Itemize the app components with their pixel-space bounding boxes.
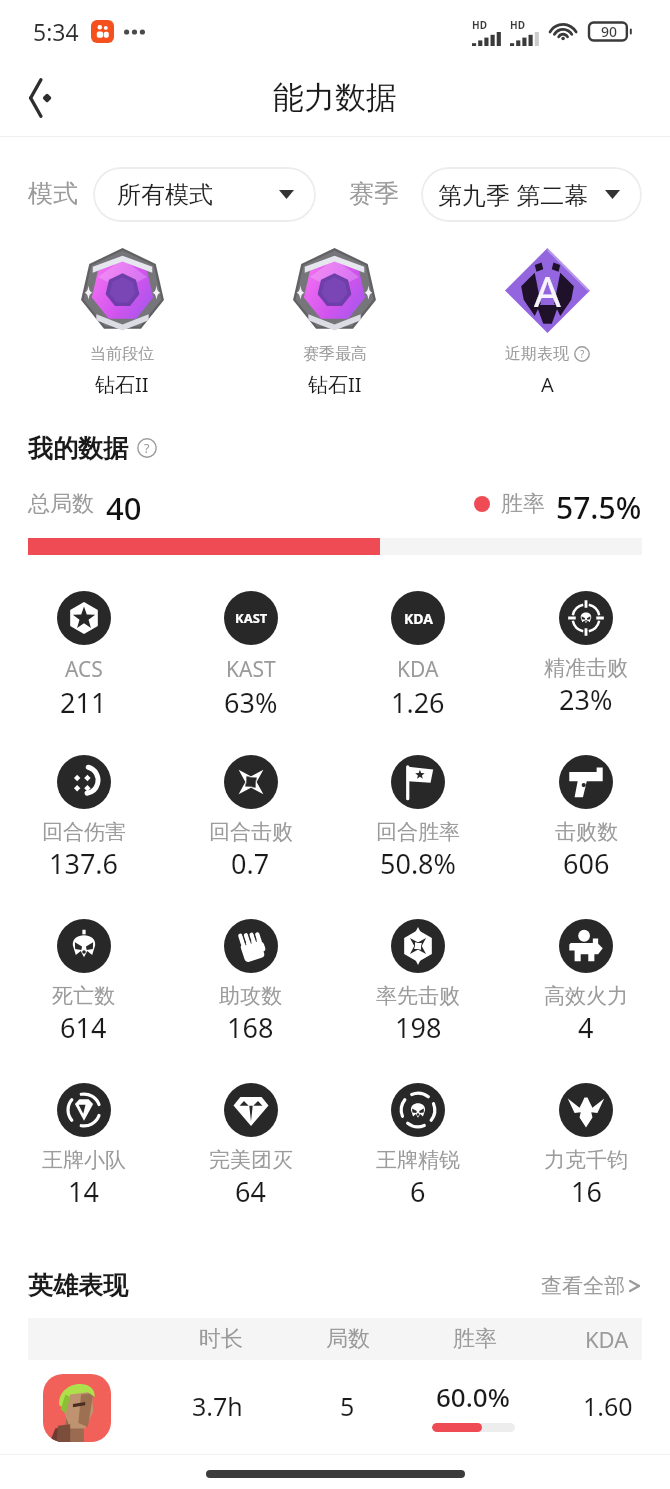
button[interactable]: 力克千钧 — [502, 1083, 670, 1210]
staticText: 64 — [235, 1173, 266, 1210]
staticText: 查看全部 — [541, 1273, 625, 1299]
staticText: KDA — [397, 655, 439, 684]
staticText: 王牌精锐 — [376, 1147, 460, 1173]
staticText: 王牌小队 — [42, 1147, 126, 1173]
staticText: 精准击败 — [544, 655, 628, 681]
staticText: 50.8% — [380, 845, 457, 882]
button[interactable]: ACS — [0, 591, 167, 721]
staticText: 40 — [106, 487, 142, 521]
staticText: 回合击败 — [209, 819, 293, 845]
staticText: 23% — [559, 681, 613, 718]
staticText: 所有模式 — [117, 180, 213, 210]
staticText: ? — [580, 347, 585, 361]
button[interactable]: 王牌精锐 — [334, 1083, 502, 1210]
staticText: 死亡数 — [52, 983, 115, 1009]
staticText: 14 — [68, 1173, 99, 1210]
staticText: 614 — [60, 1009, 107, 1046]
staticText: 力克千钧 — [544, 1147, 628, 1173]
button[interactable]: Back — [10, 69, 68, 127]
staticText: 助攻数 — [219, 983, 282, 1009]
staticText: 5 — [340, 1389, 355, 1423]
button[interactable]: KDA — [334, 591, 502, 721]
staticText: 16 — [571, 1173, 602, 1210]
staticText: A — [541, 371, 554, 398]
staticText: 高效火力 — [544, 983, 628, 1009]
staticText: 赛季最高 — [303, 344, 367, 364]
button[interactable]: 精准击败 — [502, 591, 670, 718]
staticText: 211 — [60, 684, 107, 721]
staticText: 完美团灭 — [209, 1147, 293, 1173]
staticText: 63% — [224, 684, 278, 721]
staticText: 率先击败 — [376, 983, 460, 1009]
staticText: 198 — [395, 1009, 442, 1046]
button[interactable]: 回合胜率 — [334, 755, 502, 882]
button[interactable]: 当前段位 — [16, 246, 228, 398]
button[interactable]: 回合击败 — [167, 755, 334, 882]
staticText: HD — [472, 18, 487, 32]
staticText: 3.7h — [192, 1389, 243, 1423]
staticText: 5:34 — [33, 16, 79, 47]
staticText: 168 — [227, 1009, 274, 1046]
staticText: A — [534, 262, 561, 319]
staticText: 赛季 — [349, 178, 399, 209]
staticText: 6 — [410, 1173, 426, 1210]
staticText: 当前段位 — [90, 344, 154, 364]
staticText: 胜率 — [501, 490, 545, 518]
staticText: 1.26 — [391, 684, 445, 721]
button[interactable]: 查看全部 — [541, 1273, 642, 1299]
staticText: HD — [510, 18, 525, 32]
button[interactable]: 高效火力 — [502, 919, 670, 1046]
staticText: 钻石II — [95, 371, 149, 398]
staticText: 137.6 — [49, 845, 119, 882]
button[interactable]: 死亡数 — [0, 919, 167, 1046]
staticText: 能力数据 — [273, 78, 397, 117]
button[interactable]: 率先击败 — [334, 919, 502, 1046]
staticText: KAST — [226, 655, 276, 684]
staticText: 击败数 — [555, 819, 618, 845]
staticText: 90 — [601, 22, 618, 41]
button[interactable]: 击败数 — [502, 755, 670, 882]
button[interactable]: 王牌小队 — [0, 1083, 167, 1210]
staticText: 近期表现 — [505, 344, 569, 364]
staticText: 回合胜率 — [376, 819, 460, 845]
staticText: 4 — [578, 1009, 594, 1046]
staticText: 钻石II — [308, 371, 362, 398]
staticText: 英雄表现 — [28, 1270, 128, 1301]
button[interactable]: 所有模式 — [93, 167, 316, 222]
staticText: KDA — [585, 1324, 629, 1354]
staticText: 局数 — [326, 1325, 370, 1353]
button[interactable]: 3.7h — [0, 1360, 670, 1467]
staticText: 胜率 — [453, 1325, 497, 1353]
staticText: 606 — [563, 845, 610, 882]
button[interactable]: KAST — [167, 591, 334, 721]
staticText: 时长 — [199, 1325, 243, 1353]
staticText: 总局数 — [28, 490, 94, 518]
staticText: 1.60 — [583, 1389, 633, 1423]
button[interactable]: A — [441, 246, 654, 398]
button[interactable]: 回合伤害 — [0, 755, 167, 882]
staticText: ? — [144, 440, 150, 457]
button[interactable]: 助攻数 — [167, 919, 334, 1046]
button[interactable]: 完美团灭 — [167, 1083, 334, 1210]
staticText: 模式 — [28, 178, 78, 209]
staticText: KDA — [404, 609, 433, 628]
button[interactable]: 赛季最高 — [228, 246, 441, 398]
staticText: ACS — [65, 655, 103, 684]
staticText: 回合伤害 — [42, 819, 126, 845]
staticText: 57.5% — [556, 487, 642, 521]
staticText: 我的数据 — [28, 433, 128, 464]
staticText: 第九季 第二幕 — [438, 178, 589, 211]
button[interactable]: 第九季 第二幕 — [421, 167, 642, 222]
staticText: KAST — [235, 609, 268, 627]
staticText: 0.7 — [231, 845, 270, 882]
staticText: 60.0% — [436, 1379, 510, 1414]
